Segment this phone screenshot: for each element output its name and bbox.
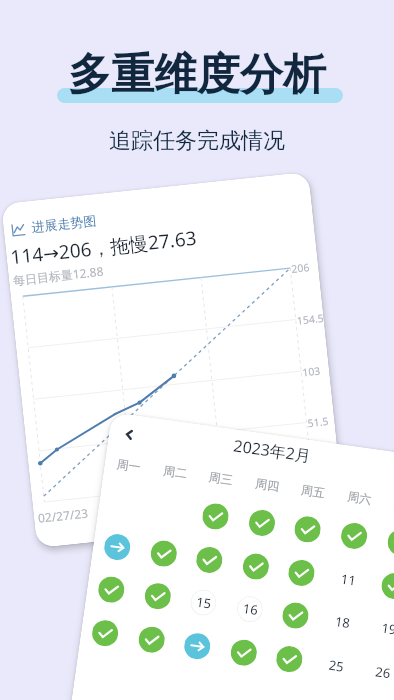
staticText: 追踪任务完成情况 xyxy=(0,127,394,700)
staticText: 154.5 xyxy=(296,311,324,328)
staticText: 26 xyxy=(374,662,392,682)
staticText: 11 xyxy=(340,570,357,589)
button[interactable] xyxy=(293,515,322,544)
staticText: 周二 xyxy=(151,461,199,483)
staticText: 2023年2月 xyxy=(108,417,394,484)
button[interactable] xyxy=(201,502,230,531)
button[interactable] xyxy=(339,521,369,551)
button[interactable]: Back xyxy=(114,420,144,449)
staticText: 18 xyxy=(334,612,351,632)
button[interactable] xyxy=(137,625,166,654)
staticText: 51.5 xyxy=(307,414,329,430)
button[interactable] xyxy=(247,508,277,538)
button[interactable] xyxy=(386,528,394,557)
button[interactable]: 26 xyxy=(368,657,394,687)
button[interactable] xyxy=(229,638,258,667)
button[interactable] xyxy=(241,552,271,581)
button[interactable] xyxy=(275,644,304,674)
button[interactable] xyxy=(183,631,212,661)
button[interactable] xyxy=(281,601,310,630)
button[interactable] xyxy=(97,575,126,604)
button[interactable]: 进展走势图 xyxy=(1,172,344,548)
staticText: 25 xyxy=(328,656,345,676)
button[interactable]: 18 xyxy=(327,607,357,637)
staticText: 206 xyxy=(291,260,311,276)
staticText: 周四 xyxy=(244,474,291,495)
button[interactable] xyxy=(380,571,394,601)
staticText: 114→206，拖慢27.63 xyxy=(9,225,198,270)
staticText: 周六 xyxy=(336,487,383,508)
staticText: 周一 xyxy=(105,455,152,476)
staticText: 多重维度分析 xyxy=(0,48,394,700)
staticText: 16 xyxy=(242,599,259,619)
staticText: 周三 xyxy=(197,468,245,489)
staticText: 周五 xyxy=(289,481,337,502)
button[interactable]: 11 xyxy=(333,565,363,594)
button[interactable]: 25 xyxy=(321,651,351,680)
button[interactable] xyxy=(143,581,172,611)
button[interactable] xyxy=(287,558,316,588)
button[interactable] xyxy=(103,532,132,562)
staticText: 19 xyxy=(380,619,394,639)
staticText: 103 xyxy=(301,363,322,379)
button[interactable]: 19 xyxy=(374,614,394,643)
staticText: 02/27/23 xyxy=(37,505,90,526)
staticText: 每日目标量12.88 xyxy=(12,263,104,288)
button[interactable]: 16 xyxy=(235,594,265,624)
staticText: 15 xyxy=(195,593,213,613)
button[interactable] xyxy=(149,539,178,568)
button[interactable] xyxy=(90,618,120,648)
staticText: 进展走势图 xyxy=(31,212,97,235)
button[interactable]: 15 xyxy=(189,588,218,617)
button[interactable] xyxy=(195,545,224,575)
